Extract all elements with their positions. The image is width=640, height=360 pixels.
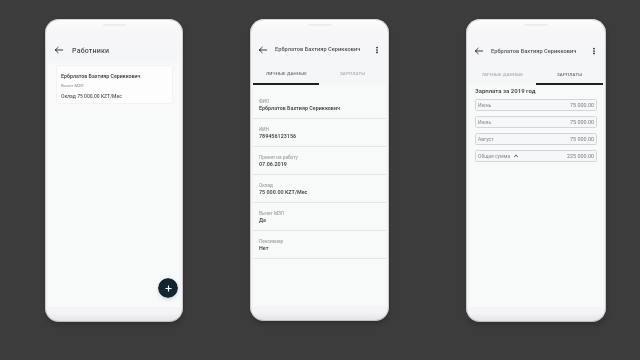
staticText: ИИН [259,127,270,133]
staticText: 07.06.2019 [259,161,287,167]
staticText: Ербрлатов Бахтияр Сериккович [491,48,577,55]
staticText: Ербрлатов Бахтияр Сериккович [275,46,361,53]
staticText: 789456123156 [259,133,297,139]
staticText: ФИО [259,99,270,105]
staticText: Пенсионер [259,239,284,245]
staticText: 225 000.00 [567,153,594,159]
button[interactable]: Общая сумма [475,150,597,162]
button[interactable]: ИИН [253,119,386,147]
button[interactable]: Back [474,46,484,56]
staticText: Принят на работу [259,155,298,161]
button[interactable]: Август [475,133,597,145]
button[interactable]: ЛИЧНЫЕ ДАННЫЕ [469,66,536,83]
staticText: Работники [72,46,110,54]
button[interactable]: Июль [475,116,597,128]
staticText: 75 000.00 [570,119,594,125]
staticText: ЛИЧНЫЕ ДАННЫЕ [266,71,307,76]
staticText: Оклад [259,183,273,189]
staticText: Зарплата за 2019 год [475,87,536,94]
staticText: ЛИЧНЫЕ ДАННЫЕ [482,72,523,77]
staticText: Июль [478,119,492,125]
staticText: ЗАРПЛАТЫ [557,72,583,77]
button[interactable]: ЗАРПЛАТЫ [319,63,386,83]
staticText: Оклад 75 000.00 KZT/Мес [61,93,122,99]
staticText: Август [478,136,494,142]
staticText: 75 000.00 [570,102,594,108]
button[interactable]: Июнь [475,99,597,111]
staticText: 75 000.00 [570,136,594,142]
staticText: ЗАРПЛАТЫ [340,71,366,76]
button[interactable]: Back [258,45,268,55]
button[interactable]: ЗАРПЛАТЫ [536,66,603,83]
button[interactable]: Принят на работу [253,147,386,175]
staticText: Общая сумма [478,153,511,159]
button[interactable]: ЛИЧНЫЕ ДАННЫЕ [253,63,319,83]
button[interactable]: Пенсионер [253,231,386,259]
button[interactable]: Add employee [158,278,178,298]
staticText: Вычет МЗП [61,83,84,88]
staticText: Июнь [478,102,492,108]
staticText: Ербрлатов Бахтияр Сериккович [259,105,340,111]
staticText: Нет [259,245,269,251]
button[interactable]: More options [589,46,599,56]
staticText: 75 000.00 KZT/Мес [259,189,308,195]
button[interactable]: Ербрлатов Бахтияр Сериккович [56,65,173,104]
button[interactable]: More options [372,45,382,55]
staticText: Вычет МЗП [259,211,285,217]
button[interactable]: Вычет МЗП [253,203,386,231]
button[interactable]: ФИО [253,91,386,119]
button[interactable]: Оклад [253,175,386,203]
staticText: Да [259,217,266,223]
staticText: Ербрлатов Бахтияр Сериккович [61,73,141,79]
button[interactable]: Back [54,45,64,55]
